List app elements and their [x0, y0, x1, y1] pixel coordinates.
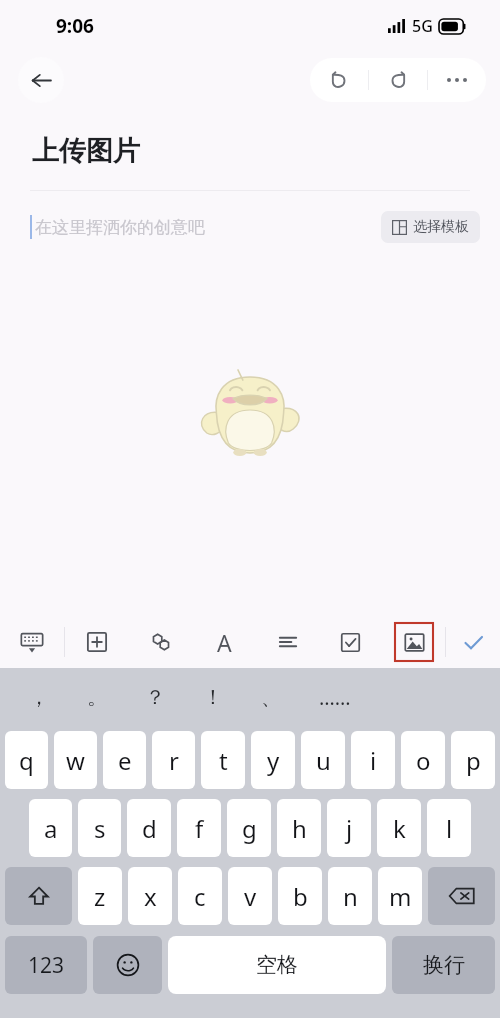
staticText: t: [219, 744, 228, 777]
staticText: r: [169, 744, 179, 777]
button[interactable]: Text style: [193, 616, 256, 668]
staticText: x: [144, 880, 157, 913]
button[interactable]: Insert: [65, 616, 129, 668]
staticText: 123: [28, 951, 65, 980]
button[interactable]: 空格: [168, 936, 386, 994]
button[interactable]: 、: [242, 668, 300, 726]
button[interactable]: b: [278, 867, 322, 925]
button[interactable]: p: [451, 731, 495, 789]
staticText: 。: [87, 685, 107, 710]
staticText: m: [389, 880, 412, 913]
button[interactable]: Back: [18, 57, 64, 103]
staticText: b: [293, 880, 308, 913]
button[interactable]: a: [29, 799, 72, 857]
button[interactable]: Redo: [369, 58, 427, 102]
staticText: 9:06: [56, 13, 94, 39]
staticText: ！: [203, 685, 223, 710]
button[interactable]: 选择模板: [381, 211, 480, 243]
button[interactable]: Done: [446, 616, 500, 668]
staticText: 换行: [423, 952, 465, 978]
button[interactable]: t: [201, 731, 245, 789]
button[interactable]: Checklist: [319, 616, 382, 668]
staticText: 上传图片: [32, 134, 140, 168]
button[interactable]: j: [327, 799, 371, 857]
button[interactable]: m: [378, 867, 422, 925]
staticText: g: [242, 812, 257, 845]
button[interactable]: o: [401, 731, 445, 789]
button[interactable]: l: [427, 799, 471, 857]
staticText: w: [66, 744, 85, 777]
button[interactable]: w: [54, 731, 97, 789]
staticText: q: [19, 744, 34, 777]
button[interactable]: Shift: [5, 867, 72, 925]
staticText: h: [292, 812, 307, 845]
button[interactable]: Image: [382, 616, 445, 668]
button[interactable]: Align: [256, 616, 319, 668]
button[interactable]: 123: [5, 936, 87, 994]
staticText: A: [217, 627, 232, 658]
button[interactable]: v: [228, 867, 272, 925]
button[interactable]: x: [128, 867, 172, 925]
button[interactable]: r: [152, 731, 195, 789]
staticText: l: [446, 812, 453, 845]
button[interactable]: n: [328, 867, 372, 925]
button[interactable]: More options: [428, 58, 486, 102]
button[interactable]: Link: [129, 616, 193, 668]
button[interactable]: z: [78, 867, 122, 925]
button[interactable]: ……: [300, 668, 370, 726]
button[interactable]: s: [78, 799, 121, 857]
staticText: j: [346, 812, 353, 845]
button[interactable]: ？: [126, 668, 184, 726]
staticText: f: [195, 812, 204, 845]
staticText: ？: [145, 685, 165, 710]
staticText: 在这里挥洒你的创意吧: [35, 217, 205, 238]
staticText: o: [416, 744, 431, 777]
staticText: c: [194, 880, 206, 913]
button[interactable]: Emoji: [93, 936, 162, 994]
staticText: s: [94, 812, 106, 845]
staticText: e: [118, 744, 132, 777]
button[interactable]: e: [103, 731, 146, 789]
button[interactable]: Keyboard: [0, 616, 64, 668]
button[interactable]: 。: [68, 668, 126, 726]
staticText: z: [94, 880, 106, 913]
button[interactable]: g: [227, 799, 271, 857]
staticText: ，: [29, 685, 49, 710]
staticText: 空格: [256, 952, 298, 978]
button[interactable]: h: [277, 799, 321, 857]
button[interactable]: f: [177, 799, 221, 857]
button[interactable]: Backspace: [428, 867, 495, 925]
staticText: v: [244, 880, 257, 913]
staticText: y: [267, 744, 280, 777]
staticText: d: [142, 812, 157, 845]
staticText: 5G: [412, 15, 433, 37]
button[interactable]: k: [377, 799, 421, 857]
staticText: u: [316, 744, 331, 777]
button[interactable]: 换行: [392, 936, 495, 994]
button[interactable]: Undo: [310, 58, 368, 102]
staticText: k: [393, 812, 406, 845]
button[interactable]: q: [5, 731, 48, 789]
button[interactable]: c: [178, 867, 222, 925]
staticText: 、: [261, 685, 281, 710]
button[interactable]: ！: [184, 668, 242, 726]
staticText: ……: [319, 684, 351, 711]
button[interactable]: ，: [10, 668, 68, 726]
staticText: i: [370, 744, 377, 777]
button[interactable]: d: [127, 799, 171, 857]
staticText: 选择模板: [413, 218, 469, 236]
staticText: n: [343, 880, 358, 913]
button[interactable]: u: [301, 731, 345, 789]
button[interactable]: i: [351, 731, 395, 789]
staticText: p: [466, 744, 481, 777]
button[interactable]: y: [251, 731, 295, 789]
staticText: a: [44, 812, 58, 845]
